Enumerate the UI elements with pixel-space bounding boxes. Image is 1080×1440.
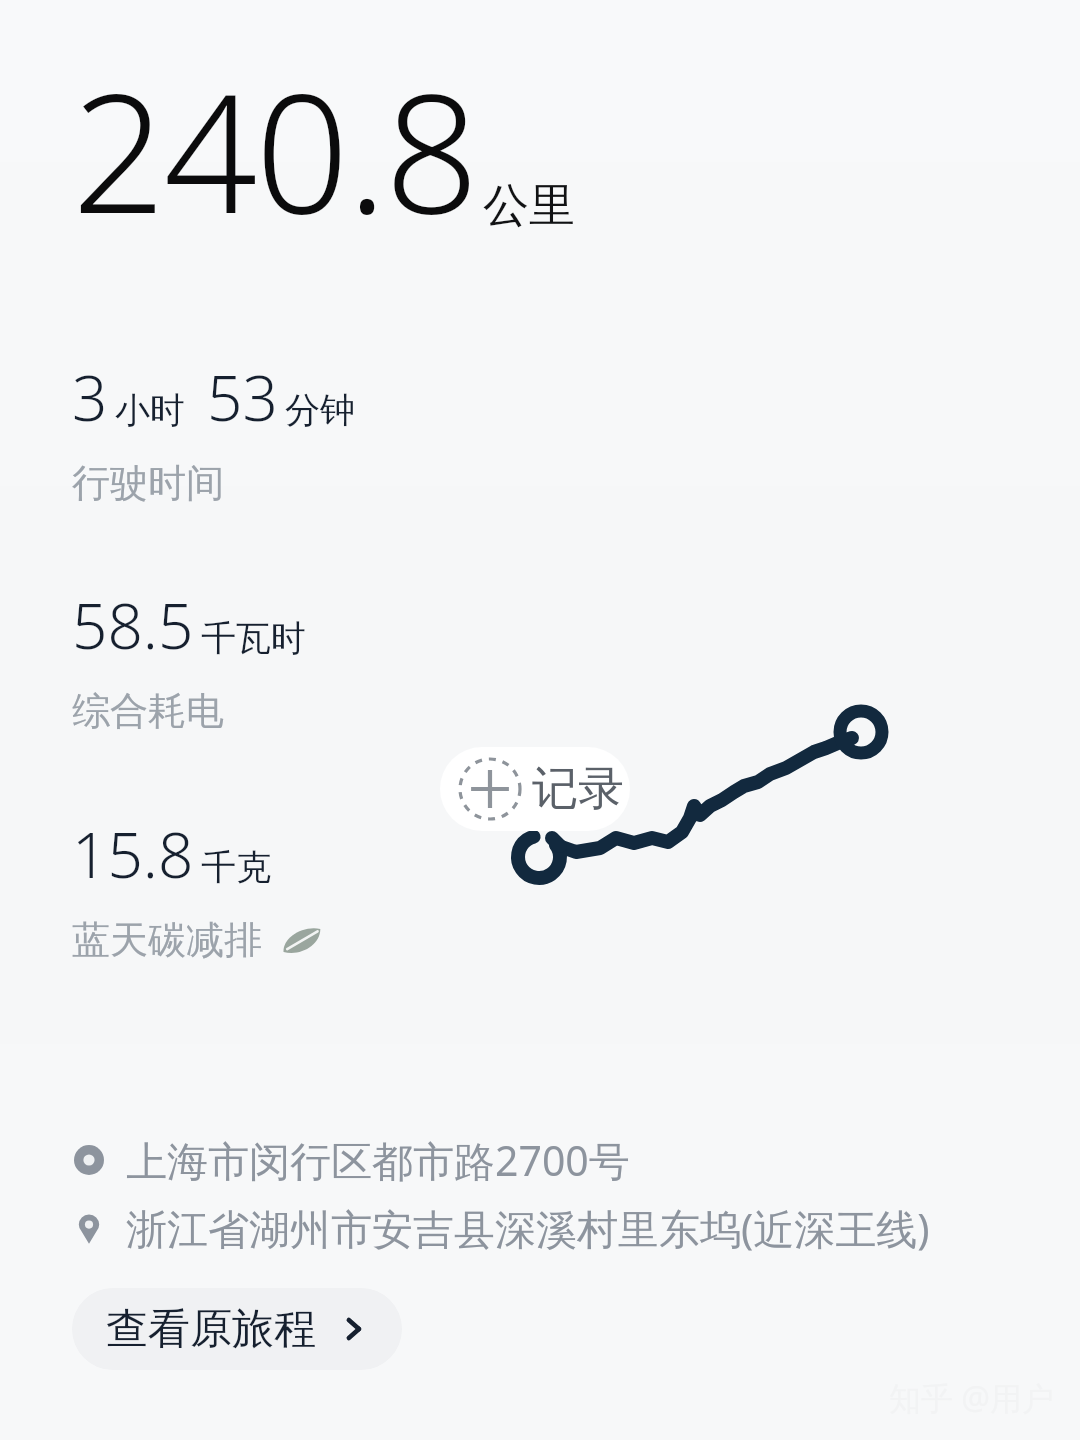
staticText: 15.8 <box>72 812 194 896</box>
button[interactable]: 记录 <box>440 747 630 831</box>
staticText: 记录 <box>532 760 624 818</box>
staticText: 58.5 <box>72 583 194 667</box>
staticText: 53 <box>207 355 278 439</box>
staticText: 行驶时间 <box>72 459 224 507</box>
staticText: 综合耗电 <box>72 687 224 735</box>
staticText: 3 <box>72 355 108 439</box>
staticText: 浙江省湖州市安吉县深溪村里东坞(近深王线) <box>126 1200 930 1256</box>
staticText: 千瓦时 <box>201 616 306 660</box>
staticText: 千克 <box>201 845 271 889</box>
staticText: 上海市闵行区都市路2700号 <box>126 1132 630 1188</box>
staticText: 240.8 <box>72 38 477 261</box>
button[interactable]: 浙江省湖州市安吉县深溪村里东坞(近深王线) <box>72 1200 930 1256</box>
staticText: 蓝天碳减排 <box>72 916 262 964</box>
staticText: 分钟 <box>285 388 355 432</box>
staticText: 公里 <box>483 177 575 235</box>
button[interactable]: 查看原旅程 <box>72 1288 402 1370</box>
staticText: 查看原旅程 <box>106 1303 316 1356</box>
staticText: 小时 <box>115 388 185 432</box>
button[interactable]: 上海市闵行区都市路2700号 <box>72 1132 630 1188</box>
